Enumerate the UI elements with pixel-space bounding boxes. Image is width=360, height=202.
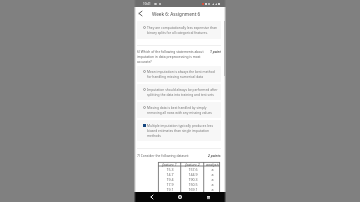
staticText: 17.9	[166, 182, 174, 187]
staticText: They are computationally less expensive …	[147, 25, 218, 35]
staticText: a	[211, 177, 214, 182]
staticText: 1 point	[210, 49, 221, 53]
staticText: 14.7	[166, 172, 174, 177]
button[interactable]: Imputation should always be performed af…	[137, 84, 221, 100]
staticText: 2 points	[208, 153, 221, 157]
staticText: 15.3	[166, 167, 174, 172]
button[interactable]: Multiple imputation typically produces l…	[137, 120, 221, 141]
staticText: a	[211, 187, 214, 192]
button[interactable]: Recent apps	[198, 192, 218, 202]
button[interactable]: Mean imputation is always the best metho…	[137, 66, 221, 82]
staticText: 157.6	[188, 167, 198, 172]
button[interactable]: Missing data is best handled by simply r…	[137, 102, 221, 118]
staticText: a	[211, 172, 214, 177]
staticText: a	[211, 167, 214, 172]
button[interactable]: Back	[134, 7, 146, 20]
staticText: 7) Consider the following dataset:	[137, 153, 206, 157]
staticText: feature 2	[185, 162, 200, 167]
staticText: 144.9	[188, 172, 198, 177]
staticText: 19.4	[166, 177, 174, 182]
staticText: Multiple imputation typically produces l…	[147, 123, 218, 138]
button[interactable]: Home	[170, 192, 190, 202]
staticText: 169.1	[188, 187, 198, 192]
staticText: Imputation should always be performed af…	[147, 87, 218, 97]
staticText: Mean imputation is always the best metho…	[147, 69, 218, 79]
staticText: 19.1	[166, 187, 174, 192]
staticText: feature 1	[162, 162, 177, 167]
button[interactable]: Back	[142, 192, 162, 202]
staticText: 190.3	[188, 177, 198, 182]
staticText: Missing data is best handled by simply r…	[147, 105, 218, 115]
staticText: 150.5	[188, 182, 198, 187]
staticText: 6) Which of the following statements abo…	[137, 49, 208, 64]
staticText: 10:41	[143, 2, 151, 6]
staticText: a	[211, 182, 214, 187]
button[interactable]: They are computationally less expensive …	[137, 21, 221, 39]
staticText: analysis	[206, 162, 219, 167]
staticText: Week 6: Assignment 6	[152, 11, 201, 17]
